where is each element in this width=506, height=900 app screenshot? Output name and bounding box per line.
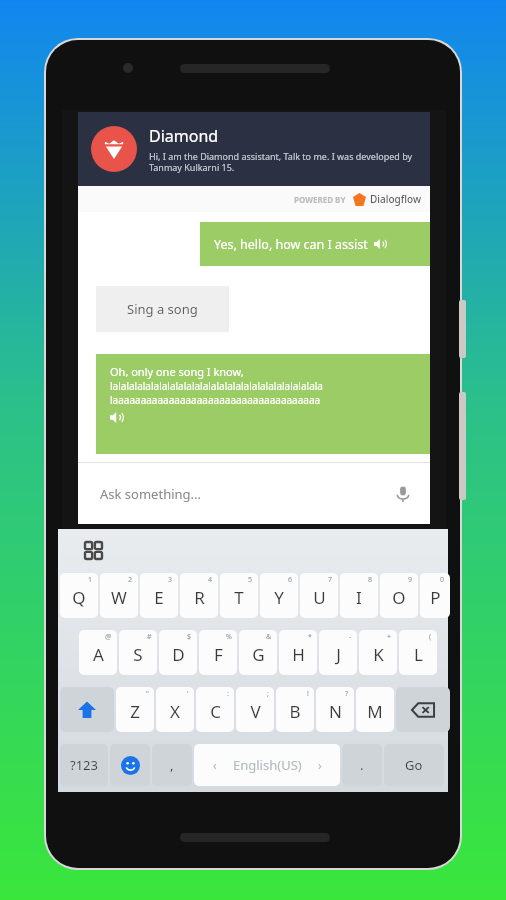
- button[interactable]: 2: [100, 573, 138, 618]
- staticText: ?: [345, 689, 349, 699]
- button[interactable]: ‹: [194, 744, 340, 786]
- button[interactable]: !: [276, 687, 314, 732]
- button[interactable]: %: [199, 630, 237, 675]
- button[interactable]: Go: [384, 744, 444, 786]
- staticText: Sing a song: [127, 300, 198, 318]
- staticText: E: [154, 586, 164, 609]
- staticText: 9: [408, 575, 413, 585]
- staticText: Hi, I am the Diamond assistant, Talk to …: [149, 150, 420, 174]
- button[interactable]: 7: [300, 573, 338, 618]
- button[interactable]: *: [279, 630, 317, 675]
- staticText: 2: [128, 575, 133, 585]
- staticText: V: [250, 700, 261, 723]
- staticText: Go: [405, 756, 423, 774]
- staticText: 4: [208, 575, 213, 585]
- staticText: 7: [328, 575, 333, 585]
- staticText: 3: [168, 575, 173, 585]
- staticText: W: [111, 586, 127, 609]
- button[interactable]: ": [116, 687, 154, 732]
- button[interactable]: Keyboard menu: [80, 537, 106, 563]
- button[interactable]: Oh, only one song I know,: [96, 354, 430, 454]
- staticText: I: [356, 586, 362, 609]
- staticText: S: [133, 643, 143, 666]
- staticText: ›: [318, 757, 322, 773]
- staticText: H: [292, 643, 305, 666]
- staticText: B: [289, 700, 301, 723]
- staticText: ;: [267, 689, 269, 699]
- staticText: Oh, only one song I know,: [110, 364, 244, 379]
- staticText: #: [147, 632, 152, 642]
- button[interactable]: &: [239, 630, 277, 675]
- staticText: 6: [288, 575, 293, 585]
- staticText: Diamond: [149, 125, 219, 147]
- button[interactable]: 0: [420, 573, 450, 618]
- staticText: ,: [170, 756, 174, 774]
- staticText: X: [170, 700, 180, 723]
- staticText: !: [307, 689, 309, 699]
- button[interactable]: @: [79, 630, 117, 675]
- button[interactable]: :: [196, 687, 234, 732]
- staticText: (: [429, 632, 432, 642]
- staticText: G: [252, 643, 265, 666]
- button[interactable]: #: [119, 630, 157, 675]
- staticText: @: [105, 632, 112, 642]
- staticText: ": [146, 689, 149, 699]
- staticText: 1: [88, 575, 93, 585]
- button[interactable]: 5: [220, 573, 258, 618]
- staticText: D: [172, 643, 185, 666]
- button[interactable]: 8: [340, 573, 378, 618]
- button[interactable]: M: [356, 687, 394, 732]
- staticText: ?123: [70, 756, 98, 774]
- button[interactable]: ?: [316, 687, 354, 732]
- staticText: +: [387, 632, 392, 642]
- staticText: *: [308, 632, 312, 642]
- button[interactable]: Emoji: [110, 744, 150, 786]
- button[interactable]: Yes, hello, how can I assist: [200, 222, 430, 266]
- button[interactable]: 6: [260, 573, 298, 618]
- button[interactable]: 1: [60, 573, 98, 618]
- button[interactable]: 4: [180, 573, 218, 618]
- staticText: U: [313, 586, 326, 609]
- staticText: 8: [368, 575, 373, 585]
- staticText: N: [329, 700, 342, 723]
- staticText: $: [187, 632, 192, 642]
- staticText: -: [349, 632, 352, 642]
- staticText: ‹: [213, 757, 217, 773]
- staticText: Yes, hello, how can I assist: [214, 236, 368, 253]
- button[interactable]: Sing a song: [96, 286, 229, 332]
- button[interactable]: ,: [152, 744, 192, 786]
- button[interactable]: 3: [140, 573, 178, 618]
- button[interactable]: Voice input: [394, 485, 412, 503]
- staticText: J: [336, 643, 341, 666]
- button[interactable]: Shift: [60, 687, 114, 732]
- staticText: Q: [72, 586, 86, 609]
- other: Volume: [459, 392, 466, 500]
- staticText: .: [360, 756, 364, 774]
- staticText: 0: [440, 575, 445, 585]
- staticText: M: [367, 700, 383, 723]
- button[interactable]: Ask something...: [78, 463, 430, 524]
- button[interactable]: ?123: [60, 744, 108, 786]
- staticText: T: [234, 586, 244, 609]
- button[interactable]: ': [156, 687, 194, 732]
- button[interactable]: $: [159, 630, 197, 675]
- staticText: &: [266, 632, 272, 642]
- button[interactable]: 9: [380, 573, 418, 618]
- button[interactable]: ;: [236, 687, 274, 732]
- button[interactable]: -: [319, 630, 357, 675]
- button[interactable]: .: [342, 744, 382, 786]
- staticText: POWERED BY: [294, 194, 346, 205]
- staticText: L: [414, 643, 423, 666]
- button[interactable]: Backspace: [396, 687, 450, 732]
- staticText: Dialogflow: [370, 192, 422, 206]
- staticText: R: [194, 586, 205, 609]
- button[interactable]: +: [359, 630, 397, 675]
- staticText: Y: [274, 586, 284, 609]
- staticText: lalalalalalalalalalalalalalalalalalalala…: [110, 379, 323, 393]
- staticText: O: [392, 586, 406, 609]
- staticText: laaaaaaaaaaaaaaaaaaaaaaaaaaaaaaaaaaaaa: [110, 393, 321, 407]
- button[interactable]: (: [399, 630, 437, 675]
- staticText: :: [227, 689, 229, 699]
- staticText: ': [187, 689, 189, 699]
- staticText: Ask something...: [100, 485, 394, 503]
